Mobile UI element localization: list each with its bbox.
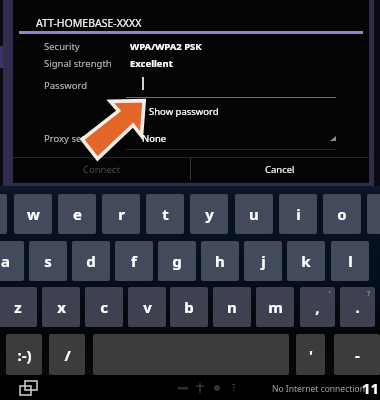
button[interactable]	[126, 75, 336, 98]
staticText: y	[205, 204, 214, 224]
button[interactable]: z	[0, 287, 37, 327]
staticText: u	[249, 204, 259, 224]
staticText: -	[355, 345, 360, 365]
staticText: '	[329, 289, 331, 299]
button[interactable]: x	[42, 287, 80, 327]
staticText: r	[118, 204, 125, 224]
button[interactable]: t	[146, 194, 184, 234]
button[interactable]: m	[256, 287, 294, 327]
button[interactable]: n	[213, 287, 251, 327]
staticText: Password	[44, 79, 87, 92]
button[interactable]: Cancel	[191, 158, 369, 180]
staticText: ?	[367, 289, 371, 299]
staticText: s	[44, 251, 52, 271]
staticText: :-)	[17, 345, 32, 365]
button[interactable]: None	[126, 128, 336, 150]
button[interactable]: k	[287, 241, 325, 281]
button[interactable]: v	[128, 287, 166, 327]
button[interactable]: d	[72, 241, 110, 281]
button[interactable]: h	[201, 241, 239, 281]
staticText: a	[1, 251, 10, 271]
staticText: ?	[232, 382, 236, 393]
staticText: .	[355, 297, 360, 317]
staticText: w	[27, 204, 40, 224]
staticText: Connect	[83, 163, 120, 176]
button[interactable]: i	[279, 194, 317, 234]
staticText: No Internet connection	[272, 383, 365, 395]
button[interactable]: q	[0, 194, 7, 234]
button[interactable]: l	[331, 241, 369, 281]
staticText: Cancel	[265, 163, 295, 176]
staticText: ATT-HOMEBASE-XXXX	[36, 16, 142, 30]
button[interactable]: a	[0, 241, 24, 281]
button[interactable]: Connect	[13, 158, 190, 180]
staticText: '	[309, 345, 313, 365]
staticText: t	[162, 204, 169, 224]
staticText: k	[301, 251, 311, 271]
button[interactable]: f	[115, 241, 153, 281]
button[interactable]: c	[85, 287, 123, 327]
button[interactable]: g	[158, 241, 196, 281]
button[interactable]: e	[58, 194, 96, 234]
staticText: c	[100, 297, 108, 317]
staticText: Security	[44, 40, 80, 53]
staticText: None	[142, 132, 167, 145]
staticText: m	[268, 297, 283, 317]
button[interactable]: :-)	[6, 334, 42, 375]
staticText: i	[296, 204, 301, 224]
staticText: f	[131, 251, 137, 271]
staticText: e	[73, 204, 82, 224]
button[interactable]: y	[190, 194, 228, 234]
staticText: WPA/WPA2 PSK	[130, 40, 202, 53]
button[interactable]: /	[49, 334, 85, 375]
button[interactable]: o	[323, 194, 361, 234]
staticText: j	[261, 251, 266, 271]
staticText: Excellent	[130, 57, 173, 70]
staticText: /	[64, 345, 71, 365]
staticText: Proxy settings	[44, 132, 107, 145]
staticText: v	[143, 297, 152, 317]
button[interactable]: s	[29, 241, 67, 281]
staticText: h	[215, 251, 225, 271]
button[interactable]: b	[170, 287, 208, 327]
staticText: d	[86, 251, 96, 271]
staticText: Signal strength	[44, 57, 112, 70]
button[interactable]: r	[102, 194, 140, 234]
staticText: z	[14, 297, 22, 317]
staticText: l	[348, 251, 353, 271]
staticText: x	[57, 297, 66, 317]
staticText: n	[227, 297, 237, 317]
staticText: g	[172, 251, 182, 271]
button[interactable]: '	[296, 334, 325, 375]
staticText: b	[184, 297, 194, 317]
staticText: o	[337, 204, 347, 224]
button[interactable]: j	[244, 241, 282, 281]
button[interactable]: -	[334, 334, 380, 375]
staticText: ,	[315, 297, 320, 317]
button[interactable]: .	[340, 287, 375, 327]
button[interactable]: u	[235, 194, 273, 234]
button[interactable]: ,	[300, 287, 335, 327]
button[interactable]: Recent apps	[16, 379, 40, 397]
staticText: Show password	[149, 105, 219, 118]
staticText: 11	[362, 378, 380, 398]
button[interactable]: w	[14, 194, 52, 234]
button[interactable]: Show password	[145, 105, 235, 121]
